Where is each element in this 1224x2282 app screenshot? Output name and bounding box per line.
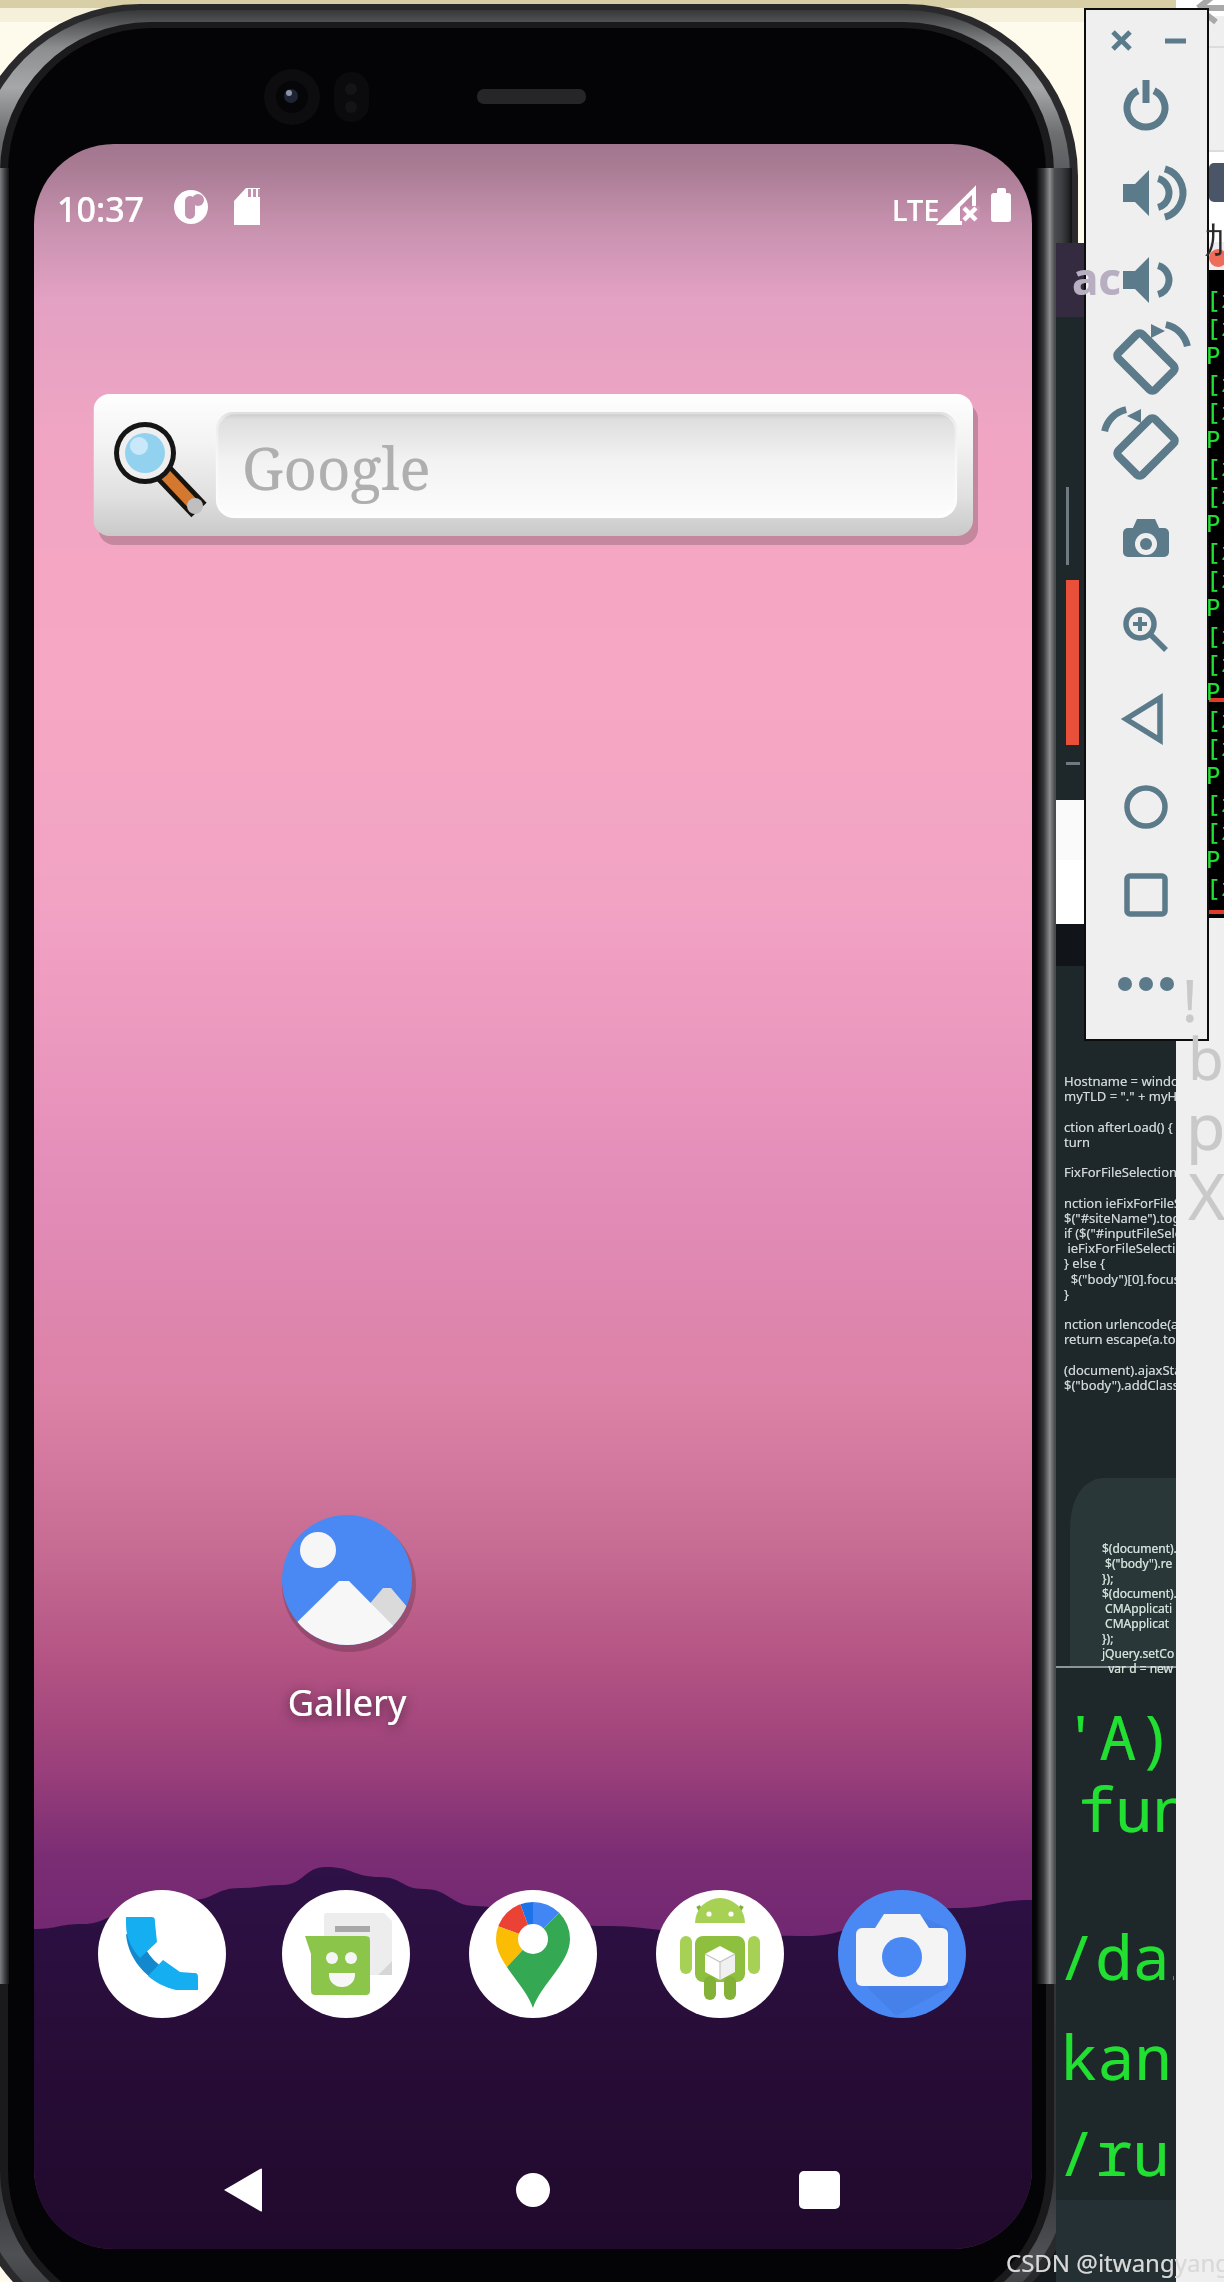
staticText: turn xyxy=(1064,1133,1176,1151)
staticText: $("body").re xyxy=(1102,1555,1176,1571)
staticText: [z xyxy=(1206,618,1224,651)
staticText: Gallery xyxy=(147,1678,547,1736)
staticText: P xyxy=(1206,758,1224,791)
staticText: LTE xyxy=(892,190,1224,229)
staticText: [z xyxy=(1206,366,1224,399)
staticText: CSDN @itwangyang520 xyxy=(1006,2246,1224,2279)
staticText: [z xyxy=(1206,786,1224,819)
button[interactable]: More xyxy=(1110,948,1182,1020)
staticText: } xyxy=(1064,1285,1176,1303)
button[interactable]: Gallery xyxy=(282,1515,412,1715)
button[interactable]: Take screenshot xyxy=(1110,501,1182,573)
staticText: X xyxy=(1188,1152,1224,1239)
staticText: $(document). xyxy=(1102,1540,1176,1556)
button[interactable]: Overview xyxy=(1110,859,1182,931)
button[interactable]: Home xyxy=(1110,771,1182,843)
staticText: [z xyxy=(1206,282,1224,315)
button[interactable]: Recent apps xyxy=(766,2155,866,2225)
staticText: 'A) xyxy=(1062,1694,1176,1778)
staticText: $("body")[0].focus() xyxy=(1064,1270,1176,1288)
staticText: } else { xyxy=(1064,1254,1176,1272)
staticText: [z xyxy=(1206,394,1224,427)
button[interactable]: Volume up xyxy=(1110,157,1182,229)
staticText: func xyxy=(1078,1766,1176,1850)
staticText: var d = new xyxy=(1102,1660,1176,1676)
staticText: [z xyxy=(1206,730,1224,763)
staticText: nction urlencode(a) xyxy=(1064,1315,1176,1333)
button[interactable]: Rotate right xyxy=(1110,411,1182,483)
staticText: Google xyxy=(242,428,1142,507)
button[interactable]: Zoom xyxy=(1110,594,1182,666)
button[interactable]: Back xyxy=(1110,683,1182,755)
staticText: [z xyxy=(1206,478,1224,511)
staticText: P xyxy=(1206,674,1224,707)
staticText: ieFixForFileSelectio xyxy=(1064,1239,1176,1257)
staticText: P xyxy=(1206,590,1224,623)
staticText: nction ieFixForFileS xyxy=(1064,1194,1176,1212)
button[interactable]: API Demos xyxy=(656,1890,784,2018)
staticText: CMApplicati xyxy=(1102,1600,1176,1616)
staticText: 10:37 xyxy=(57,186,957,232)
staticText: /run xyxy=(1060,2110,1174,2194)
staticText: jQuery.setCo xyxy=(1102,1645,1176,1661)
staticText: ac xyxy=(1072,248,1176,308)
staticText: (document).ajaxStar xyxy=(1064,1361,1176,1379)
staticText: if ($("#inputFileSele xyxy=(1064,1224,1176,1242)
staticText: P xyxy=(1206,842,1224,875)
staticText: [z xyxy=(1206,450,1224,483)
button[interactable]: Camera xyxy=(838,1890,966,2018)
button[interactable]: Messages xyxy=(282,1890,410,2018)
staticText: 加 xyxy=(1204,218,1224,263)
button[interactable]: Close xyxy=(1100,20,1142,62)
staticText: CMApplicat xyxy=(1102,1615,1176,1631)
staticText: P xyxy=(1206,506,1224,539)
staticText: $(document). xyxy=(1102,1585,1176,1601)
button[interactable]: Volume down xyxy=(1110,244,1182,316)
staticText: ! xyxy=(1182,960,1224,1039)
staticText: [z xyxy=(1206,646,1224,679)
button[interactable]: Rotate left xyxy=(1110,326,1182,398)
staticText: }); xyxy=(1102,1570,1176,1586)
staticText: [z xyxy=(1206,562,1224,595)
staticText: [z xyxy=(1206,310,1224,343)
button[interactable]: Home xyxy=(483,2155,583,2225)
staticText: return escape(a.toSt xyxy=(1064,1330,1176,1348)
button[interactable]: Google search xyxy=(93,394,973,536)
staticText: Hostname = windo xyxy=(1064,1072,1176,1090)
staticText: [z xyxy=(1206,534,1224,567)
staticText: [z xyxy=(1206,870,1224,903)
staticText: kan/ xyxy=(1060,2014,1176,2098)
staticText: [z xyxy=(1206,702,1224,735)
button[interactable]: Minimize xyxy=(1154,20,1196,62)
staticText: [z xyxy=(1206,814,1224,847)
staticText: $("#siteName").togg xyxy=(1064,1209,1176,1227)
staticText: }); xyxy=(1102,1630,1176,1646)
staticText: FixForFileSelection xyxy=(1064,1163,1176,1181)
staticText: P xyxy=(1206,422,1224,455)
button[interactable]: Power xyxy=(1110,69,1182,141)
staticText: ction afterLoad() { xyxy=(1064,1118,1176,1136)
staticText: P xyxy=(1206,338,1224,371)
button[interactable]: Back xyxy=(250,2155,350,2225)
staticText: myTLD = "." + myH xyxy=(1064,1087,1176,1105)
staticText: $("body").addClass( xyxy=(1064,1376,1176,1394)
staticText: p xyxy=(1186,1082,1224,1169)
staticText: b xyxy=(1188,1018,1224,1097)
staticText: /dar xyxy=(1060,1914,1174,1998)
button[interactable]: Maps xyxy=(469,1890,597,2018)
button[interactable]: Phone xyxy=(98,1890,226,2018)
